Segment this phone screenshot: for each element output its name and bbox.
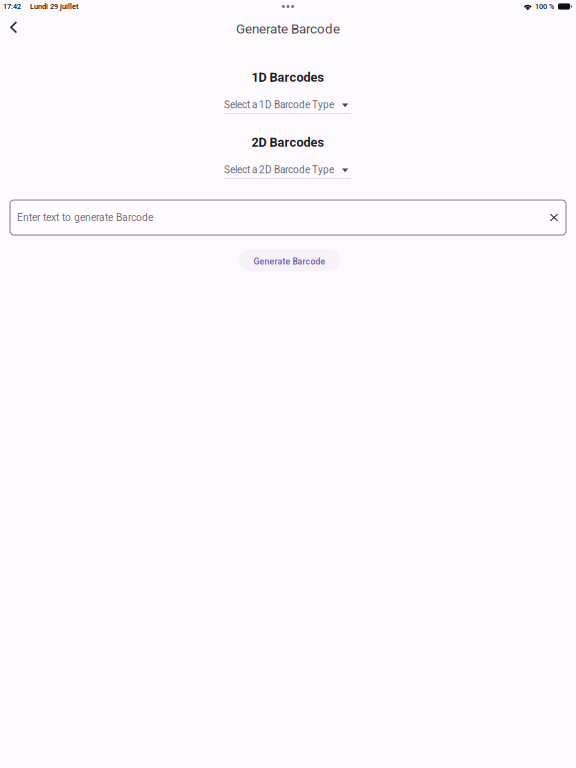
staticText: Generate Barcode <box>253 256 325 267</box>
staticText: 2D Barcodes <box>251 135 324 150</box>
button[interactable]: Generate Barcode <box>239 249 340 271</box>
staticText: Enter text to generate Barcode <box>17 211 153 223</box>
staticText: Select a 1D Barcode Type <box>224 99 334 111</box>
staticText: 100 % <box>535 2 554 11</box>
staticText: 17:42 <box>3 2 21 11</box>
button[interactable]: Clear text <box>547 210 561 224</box>
button[interactable]: Select a 1D Barcode Type <box>224 99 351 113</box>
staticText: Select a 2D Barcode Type <box>224 164 334 176</box>
staticText: Generate Barcode <box>236 21 340 37</box>
button[interactable]: Select a 2D Barcode Type <box>224 164 351 178</box>
staticText: 1D Barcodes <box>251 70 324 85</box>
staticText: Lundi 29 juillet <box>30 2 78 11</box>
button[interactable]: Back <box>3 16 25 42</box>
